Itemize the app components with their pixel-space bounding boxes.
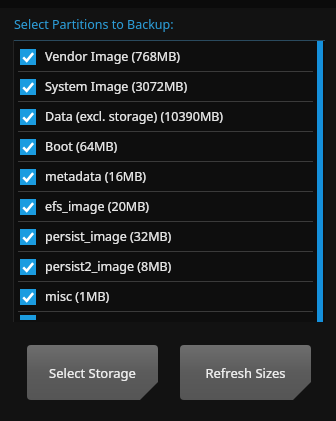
staticText: Data (excl. storage) (10390MB)	[45, 108, 224, 125]
staticText: persist_image (32MB)	[45, 228, 172, 245]
staticText: Refresh Sizes	[205, 364, 286, 382]
staticText: Select Storage	[49, 364, 136, 382]
button[interactable]: persist2_image (8MB)	[16, 252, 315, 281]
staticText: metadata (16MB)	[45, 168, 147, 185]
staticText: persist2_image (8MB)	[45, 258, 172, 275]
staticText: System Image (3072MB)	[45, 78, 188, 95]
button[interactable]	[16, 315, 315, 322]
button[interactable]: Data (excl. storage) (10390MB)	[16, 102, 315, 131]
staticText: Select Partitions to Backup:	[14, 16, 174, 33]
button[interactable]: persist_image (32MB)	[16, 222, 315, 251]
button[interactable]: efs_image (20MB)	[16, 192, 315, 221]
staticText: efs_image (20MB)	[45, 198, 150, 215]
button[interactable]: Boot (64MB)	[16, 132, 315, 161]
staticText: Vendor Image (768MB)	[45, 48, 181, 65]
staticText: Boot (64MB)	[45, 138, 118, 155]
button[interactable]: Refresh Sizes	[180, 345, 311, 400]
staticText: misc (1MB)	[45, 288, 110, 305]
button[interactable]: Select Storage	[27, 345, 158, 400]
button[interactable]: metadata (16MB)	[16, 162, 315, 191]
button[interactable]: System Image (3072MB)	[16, 72, 315, 101]
button[interactable]: misc (1MB)	[16, 282, 315, 311]
button[interactable]: Vendor Image (768MB)	[16, 42, 315, 71]
